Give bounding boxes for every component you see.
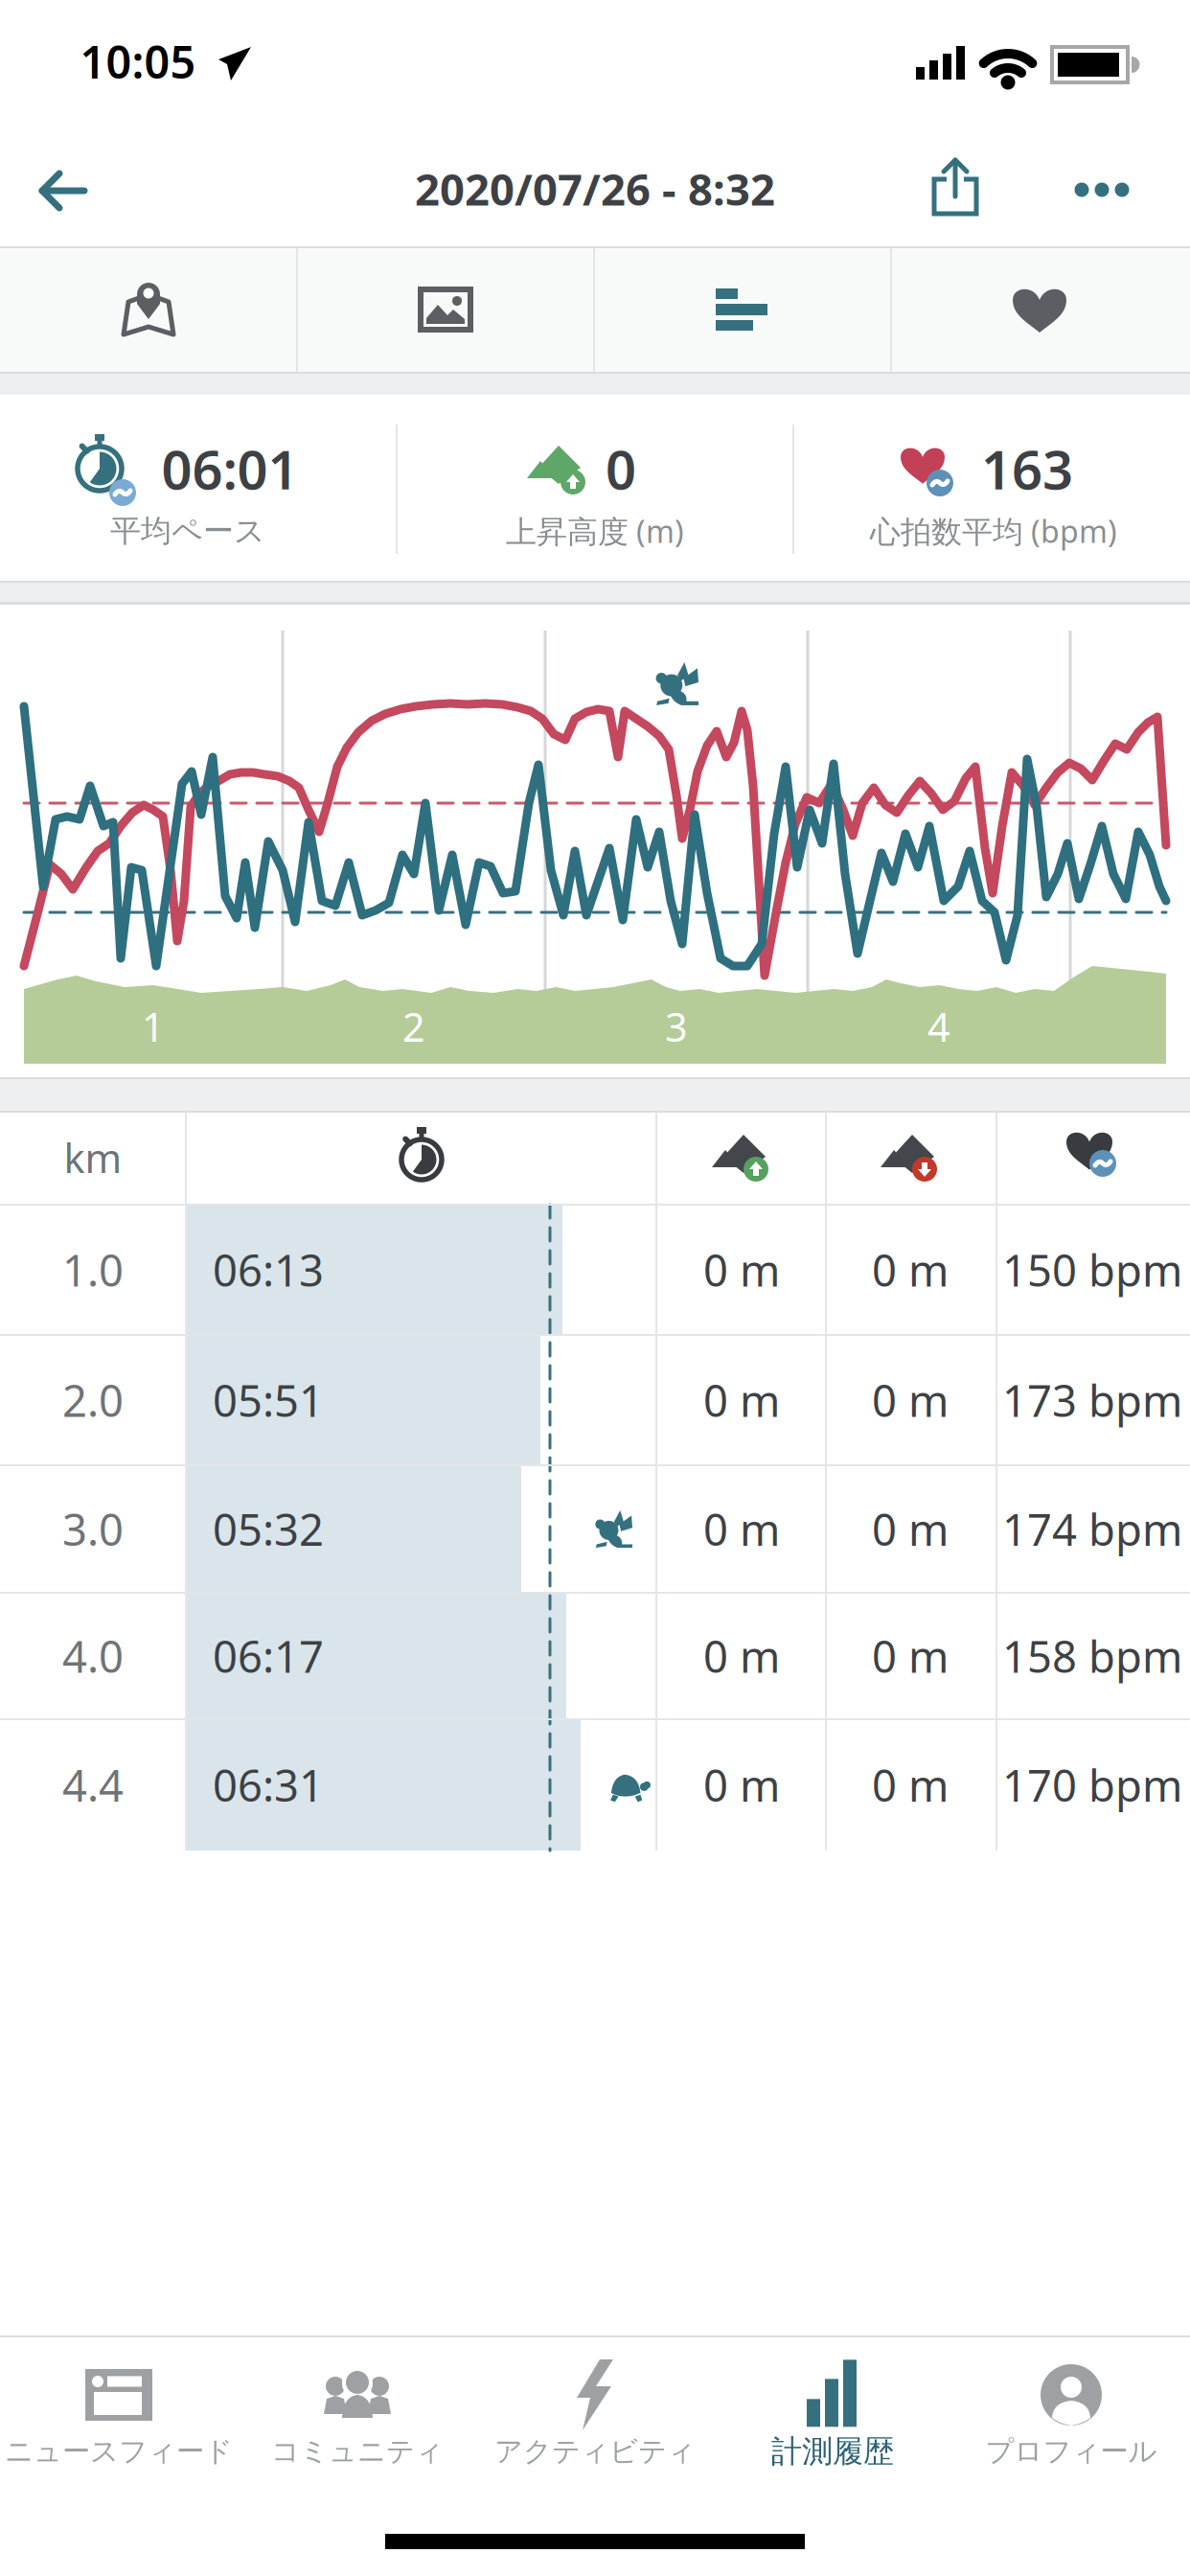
staticText: 0 m — [703, 1500, 780, 1558]
staticText: 計測履歴 — [771, 2433, 894, 2470]
staticText: 0 m — [703, 1241, 780, 1299]
button[interactable]: アクティビティ — [476, 2343, 714, 2487]
staticText: 心拍数平均 (bpm) — [870, 511, 1117, 551]
staticText: 0 m — [872, 1500, 949, 1558]
staticText: 2020/07/26 - 8:32 — [415, 160, 775, 218]
staticText: km — [64, 1131, 122, 1184]
staticText: 1.0 — [62, 1241, 124, 1299]
staticText: 06:01 — [161, 433, 298, 504]
button[interactable]: 計測履歴 — [714, 2343, 951, 2487]
staticText: 05:51 — [213, 1371, 324, 1429]
staticText: 0 — [606, 433, 636, 504]
staticText: 0 m — [872, 1756, 949, 1814]
button[interactable]: More — [1072, 159, 1132, 220]
staticText: 0 m — [703, 1627, 780, 1685]
staticText: 2 — [402, 1000, 425, 1053]
staticText: アクティビティ — [494, 2434, 696, 2469]
staticText: 4 — [927, 1000, 950, 1053]
staticText: 0 m — [703, 1371, 780, 1429]
staticText: 158 bpm — [1002, 1627, 1182, 1685]
button[interactable]: Back — [29, 160, 98, 221]
staticText: 4.0 — [62, 1627, 124, 1685]
button[interactable]: プロフィール — [952, 2343, 1190, 2487]
staticText: 1 — [142, 1000, 165, 1053]
staticText: 170 bpm — [1002, 1756, 1182, 1814]
staticText: 10:05 — [80, 32, 196, 91]
staticText: 06:17 — [213, 1627, 324, 1685]
staticText: 06:31 — [213, 1756, 324, 1814]
staticText: コミュニティ — [271, 2434, 444, 2469]
staticText: 163 — [981, 433, 1073, 504]
staticText: 0 m — [703, 1756, 780, 1814]
staticText: プロフィール — [985, 2434, 1157, 2469]
staticText: 0 m — [872, 1241, 949, 1299]
staticText: 173 bpm — [1002, 1371, 1182, 1429]
staticText: 150 bpm — [1002, 1241, 1182, 1299]
button[interactable]: ニュースフィード — [0, 2343, 238, 2487]
button[interactable]: Share — [929, 156, 981, 218]
staticText: 3.0 — [62, 1500, 124, 1558]
staticText: 06:13 — [213, 1241, 324, 1299]
button[interactable]: Likes — [891, 247, 1188, 372]
staticText: 0 m — [872, 1371, 949, 1429]
staticText: 05:32 — [213, 1500, 324, 1558]
staticText: 2.0 — [62, 1371, 124, 1429]
button[interactable]: Photos — [297, 247, 594, 372]
button[interactable]: コミュニティ — [239, 2343, 476, 2487]
staticText: ニュースフィード — [5, 2434, 233, 2469]
staticText: 平均ペース — [110, 512, 265, 550]
staticText: 4.4 — [62, 1756, 124, 1814]
staticText: 上昇高度 (m) — [506, 511, 684, 551]
button[interactable]: Statistics — [594, 247, 891, 372]
staticText: 3 — [665, 1000, 688, 1053]
staticText: 174 bpm — [1002, 1500, 1182, 1558]
staticText: 0 m — [872, 1627, 949, 1685]
button[interactable]: Map — [0, 247, 297, 372]
